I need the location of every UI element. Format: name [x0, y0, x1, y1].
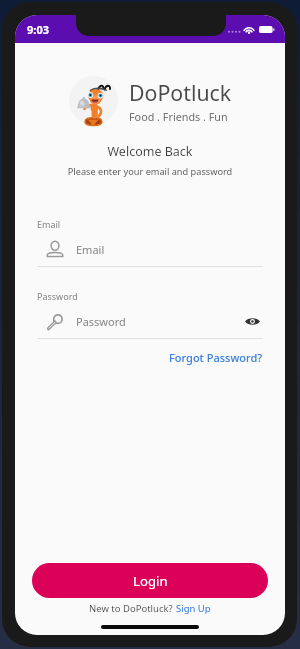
button[interactable]: Show password [241, 310, 263, 332]
staticText: DoPotluck [129, 78, 232, 107]
button[interactable]: Login [32, 563, 268, 598]
staticText: Email [37, 218, 61, 230]
staticText: Password [76, 314, 126, 329]
staticText: Email [76, 242, 105, 257]
staticText: Food . Friends . Fun [129, 109, 228, 124]
staticText: Login [133, 572, 168, 590]
button[interactable]: Forgot Password? [169, 350, 263, 365]
staticText: Welcome Back [15, 143, 285, 160]
staticText: 9:03 [27, 22, 49, 37]
staticText: Sign Up [176, 602, 211, 615]
staticText: Forgot Password? [169, 350, 263, 365]
button[interactable]: Password [37, 310, 263, 332]
button[interactable]: Email [37, 238, 263, 260]
staticText: Password [37, 290, 78, 302]
staticText: Please enter your email and password [15, 165, 285, 178]
button[interactable]: Sign Up [176, 602, 211, 615]
staticText: New to DoPotluck? [89, 602, 176, 615]
